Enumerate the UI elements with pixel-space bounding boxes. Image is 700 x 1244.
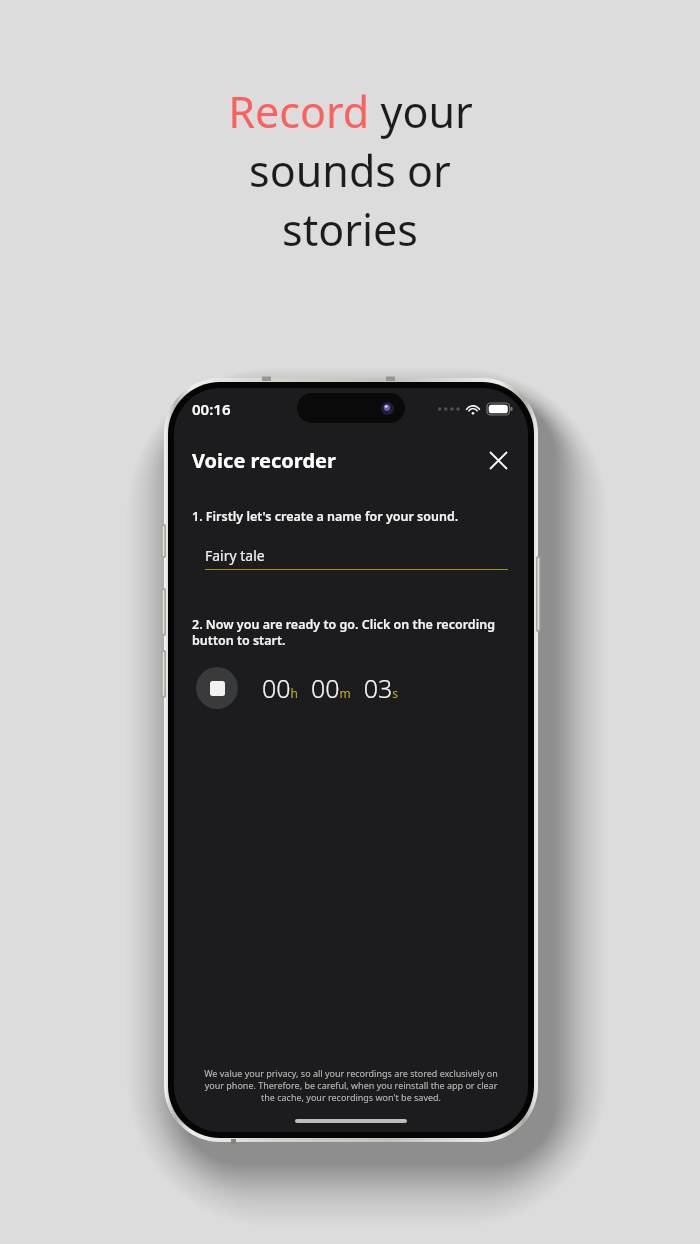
button[interactable]: Close	[478, 440, 518, 480]
staticText: Voice recorder	[192, 447, 336, 474]
staticText: Record your	[228, 82, 473, 141]
staticText: Fairy tale	[205, 546, 265, 565]
staticText: stories	[282, 200, 418, 259]
staticText: 1. Firstly let's create a name for your …	[192, 508, 459, 525]
staticText: 2. Now you are ready to go. Click on the…	[192, 616, 510, 648]
staticText: We value your privacy, so all your recor…	[201, 1067, 501, 1103]
button[interactable]: Stop recording	[196, 667, 238, 709]
button[interactable]: Fairy tale	[205, 546, 508, 570]
staticText: 00:16	[192, 399, 231, 419]
staticText: 00h 00m 03s	[262, 671, 399, 705]
staticText: sounds or	[249, 141, 451, 200]
